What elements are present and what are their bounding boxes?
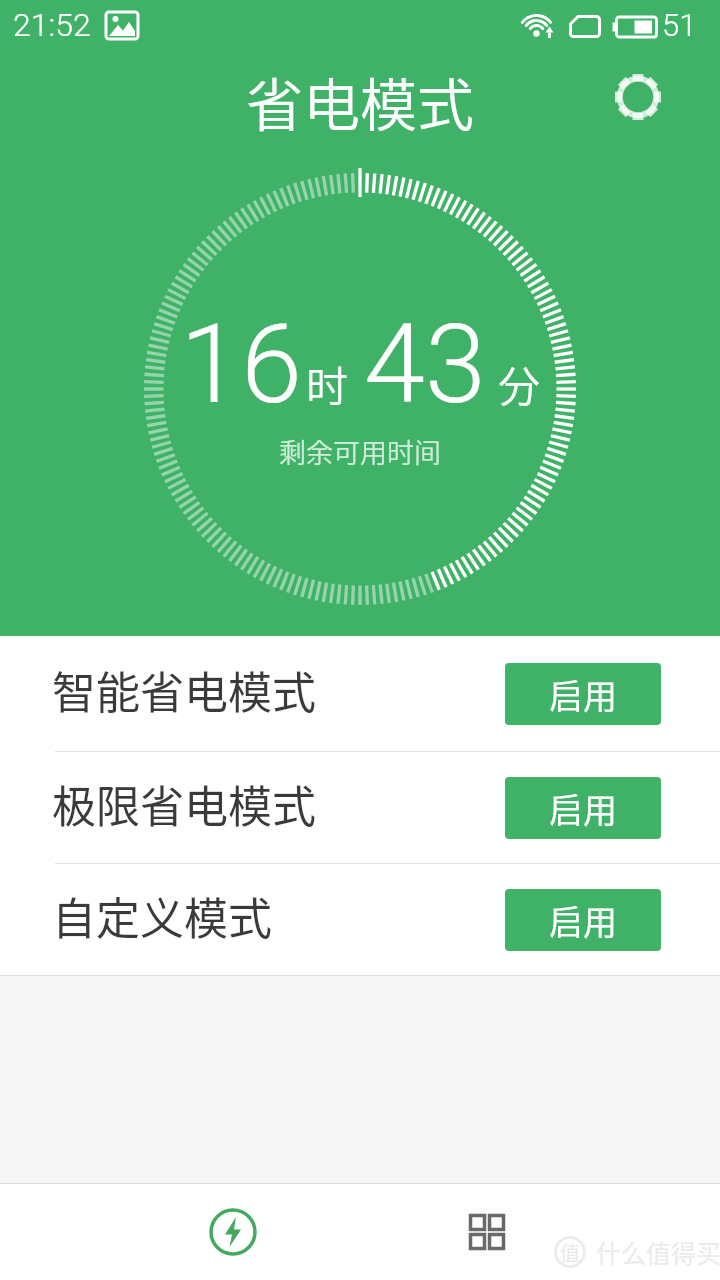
button[interactable]: 启用	[505, 663, 661, 725]
staticText: 启用	[549, 784, 617, 833]
staticText: 分	[498, 353, 541, 414]
button[interactable]: 启用	[505, 889, 661, 951]
button[interactable]: 自定义模式	[0, 864, 720, 975]
button[interactable]	[203, 1202, 263, 1262]
button[interactable]: 极限省电模式	[0, 752, 720, 863]
staticText: 21:52	[13, 6, 91, 44]
staticText: 启用	[549, 670, 617, 719]
staticText: 智能省电模式	[52, 658, 316, 722]
staticText: 省电模式	[246, 60, 474, 143]
button[interactable]	[457, 1202, 517, 1262]
staticText: 剩余可用时间	[279, 432, 441, 471]
button[interactable]: 启用	[505, 777, 661, 839]
staticText: 43	[364, 300, 487, 429]
staticText: 值	[560, 1238, 580, 1267]
button[interactable]	[614, 73, 662, 121]
button[interactable]: 智能省电模式	[0, 636, 720, 751]
staticText: 时	[306, 353, 349, 414]
staticText: 启用	[549, 896, 617, 945]
staticText: 自定义模式	[52, 884, 272, 948]
staticText: 16	[180, 300, 303, 429]
staticText: 极限省电模式	[52, 772, 316, 836]
staticText: 51	[662, 7, 697, 43]
staticText: 什么值得买	[596, 1234, 720, 1270]
